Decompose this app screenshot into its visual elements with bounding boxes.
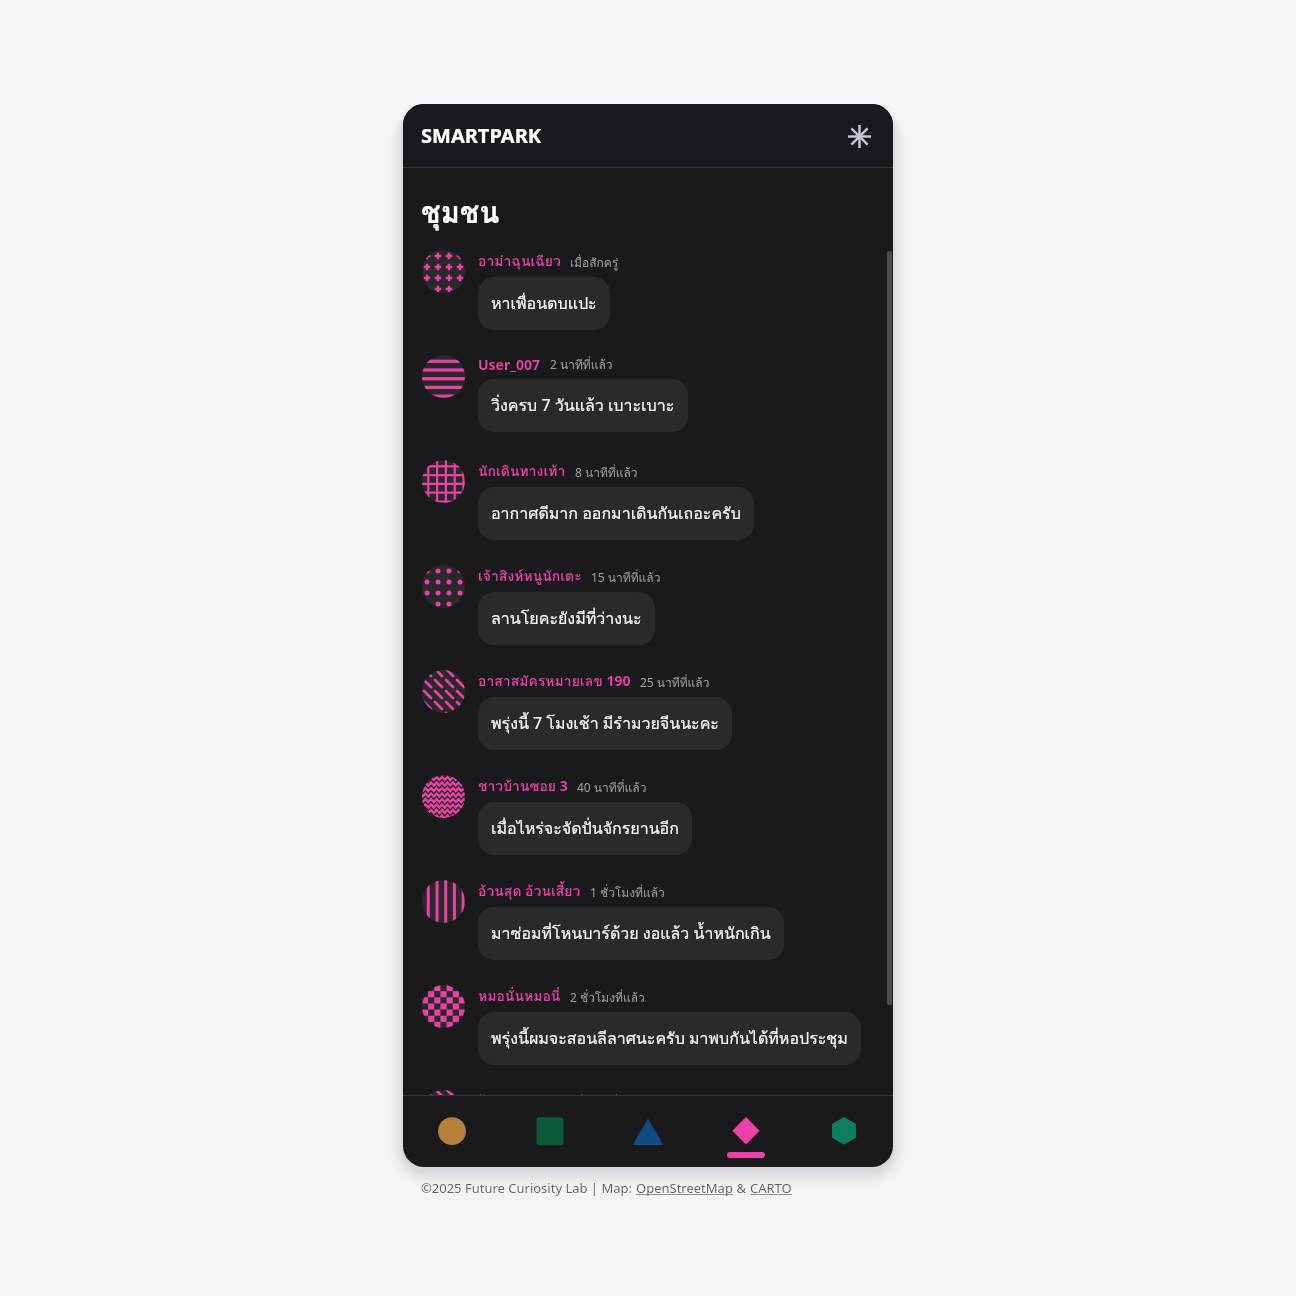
- button[interactable]: หมอนั่นหมอนี่: [403, 976, 893, 1081]
- staticText: อาม่าฉุนเฉียว: [478, 250, 561, 272]
- staticText: User_007: [478, 355, 541, 374]
- staticText: &: [733, 1179, 750, 1197]
- button[interactable]: User_007: [403, 346, 893, 451]
- staticText: เมื่อสักครู่: [570, 253, 619, 272]
- button[interactable]: อาม่าฉุนเฉียว: [403, 241, 893, 346]
- staticText: 3 ชั่วโมงที่แล้ว: [565, 1093, 640, 1095]
- staticText: มาซ่อมที่โหนบาร์ด้วย งอแล้ว น้ำหนักเกิน: [491, 921, 771, 946]
- button[interactable]: Events: [599, 1096, 697, 1167]
- staticText: 40 นาทีที่แล้ว: [577, 778, 647, 797]
- staticText: นักเดินทางเท้า: [478, 460, 566, 482]
- button[interactable]: CARTO: [750, 1179, 792, 1197]
- staticText: ป้าแต๋วตัวแม่: [478, 1090, 556, 1095]
- button[interactable]: Map: [501, 1096, 599, 1167]
- staticText: อากาศดีมาก ออกมาเดินกันเถอะครับ: [491, 501, 741, 526]
- staticText: อาสาสมัครหมายเลข 190: [478, 670, 631, 692]
- staticText: ชาวบ้านซอย 3: [478, 775, 568, 797]
- staticText: พรุ่งนี้ผมจะสอนลีลาศนะครับ มาพบกันได้ที่…: [491, 1026, 848, 1051]
- staticText: อ้วนสุด อ้วนเสี้ยว: [478, 880, 581, 902]
- staticText: ลานโยคะยังมีที่ว่างนะ: [491, 606, 642, 631]
- staticText: ©2025 Future Curiosity Lab | Map:: [421, 1179, 636, 1197]
- staticText: 25 นาทีที่แล้ว: [640, 673, 710, 692]
- button[interactable]: Sparkle: [841, 118, 877, 154]
- button[interactable]: Profile: [795, 1096, 893, 1167]
- button[interactable]: Community: [697, 1096, 795, 1167]
- staticText: พรุ่งนี้ 7 โมงเช้า มีรำมวยจีนนะคะ: [491, 711, 719, 736]
- staticText: ชุมชน: [421, 190, 500, 236]
- staticText: SMARTPARK: [421, 122, 542, 149]
- staticText: วิ่งครบ 7 วันแล้ว เบาะเบาะ: [491, 393, 675, 418]
- staticText: 15 นาทีที่แล้ว: [591, 568, 661, 587]
- button[interactable]: ชาวบ้านซอย 3: [403, 766, 893, 871]
- staticText: หาเพื่อนตบแปะ: [491, 291, 597, 316]
- staticText: เจ้าสิงห์หนูนักเตะ: [478, 565, 582, 587]
- staticText: 2 ชั่วโมงที่แล้ว: [570, 988, 645, 1007]
- staticText: เมื่อไหร่จะจัดปั่นจักรยานอีก: [491, 816, 679, 841]
- staticText: 2 นาทีที่แล้ว: [550, 355, 613, 374]
- staticText: 1 ชั่วโมงที่แล้ว: [590, 883, 665, 902]
- button[interactable]: ป้าแต๋วตัวแม่: [403, 1081, 893, 1095]
- staticText: หมอนั่นหมอนี่: [478, 985, 561, 1007]
- button[interactable]: อ้วนสุด อ้วนเสี้ยว: [403, 871, 893, 976]
- button[interactable]: OpenStreetMap: [636, 1179, 733, 1197]
- staticText: 8 นาทีที่แล้ว: [575, 463, 638, 482]
- button[interactable]: นักเดินทางเท้า: [403, 451, 893, 556]
- button[interactable]: อาสาสมัครหมายเลข 190: [403, 661, 893, 766]
- button[interactable]: เจ้าสิงห์หนูนักเตะ: [403, 556, 893, 661]
- button[interactable]: Home: [403, 1096, 501, 1167]
